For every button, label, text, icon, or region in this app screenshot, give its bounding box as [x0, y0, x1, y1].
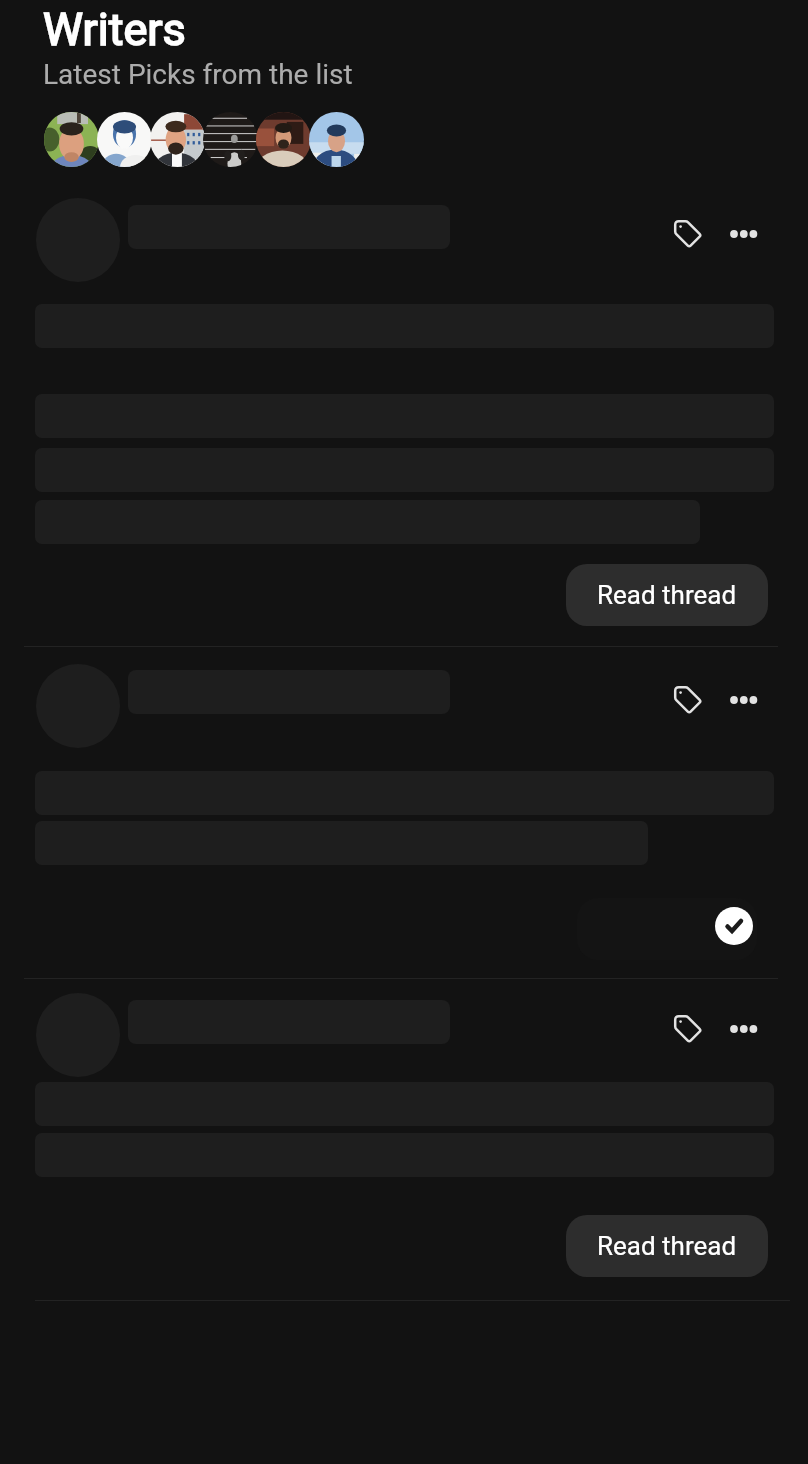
button[interactable]: Tag — [661, 207, 715, 261]
button[interactable]: Done — [715, 907, 753, 945]
button[interactable]: Writer 4 — [203, 112, 258, 167]
button[interactable]: Writer 6 — [309, 112, 364, 167]
button[interactable]: Tag — [661, 673, 715, 727]
staticText: Read thread — [597, 580, 737, 610]
button[interactable]: Writer 5 — [256, 112, 311, 167]
button[interactable]: More options — [717, 673, 771, 727]
button[interactable]: More options — [717, 1002, 771, 1056]
button[interactable]: Writer 2 — [97, 112, 152, 167]
button[interactable]: Read thread — [566, 1215, 768, 1277]
staticText: Writers — [43, 3, 186, 56]
button[interactable]: Writer 1 — [44, 112, 99, 167]
staticText: Latest Picks from the list — [43, 58, 353, 91]
button[interactable]: Writer 3 — [150, 112, 205, 167]
staticText: Read thread — [597, 1231, 737, 1261]
button[interactable]: More options — [717, 207, 771, 261]
button[interactable]: Read thread — [566, 564, 768, 626]
button[interactable]: Tag — [661, 1002, 715, 1056]
